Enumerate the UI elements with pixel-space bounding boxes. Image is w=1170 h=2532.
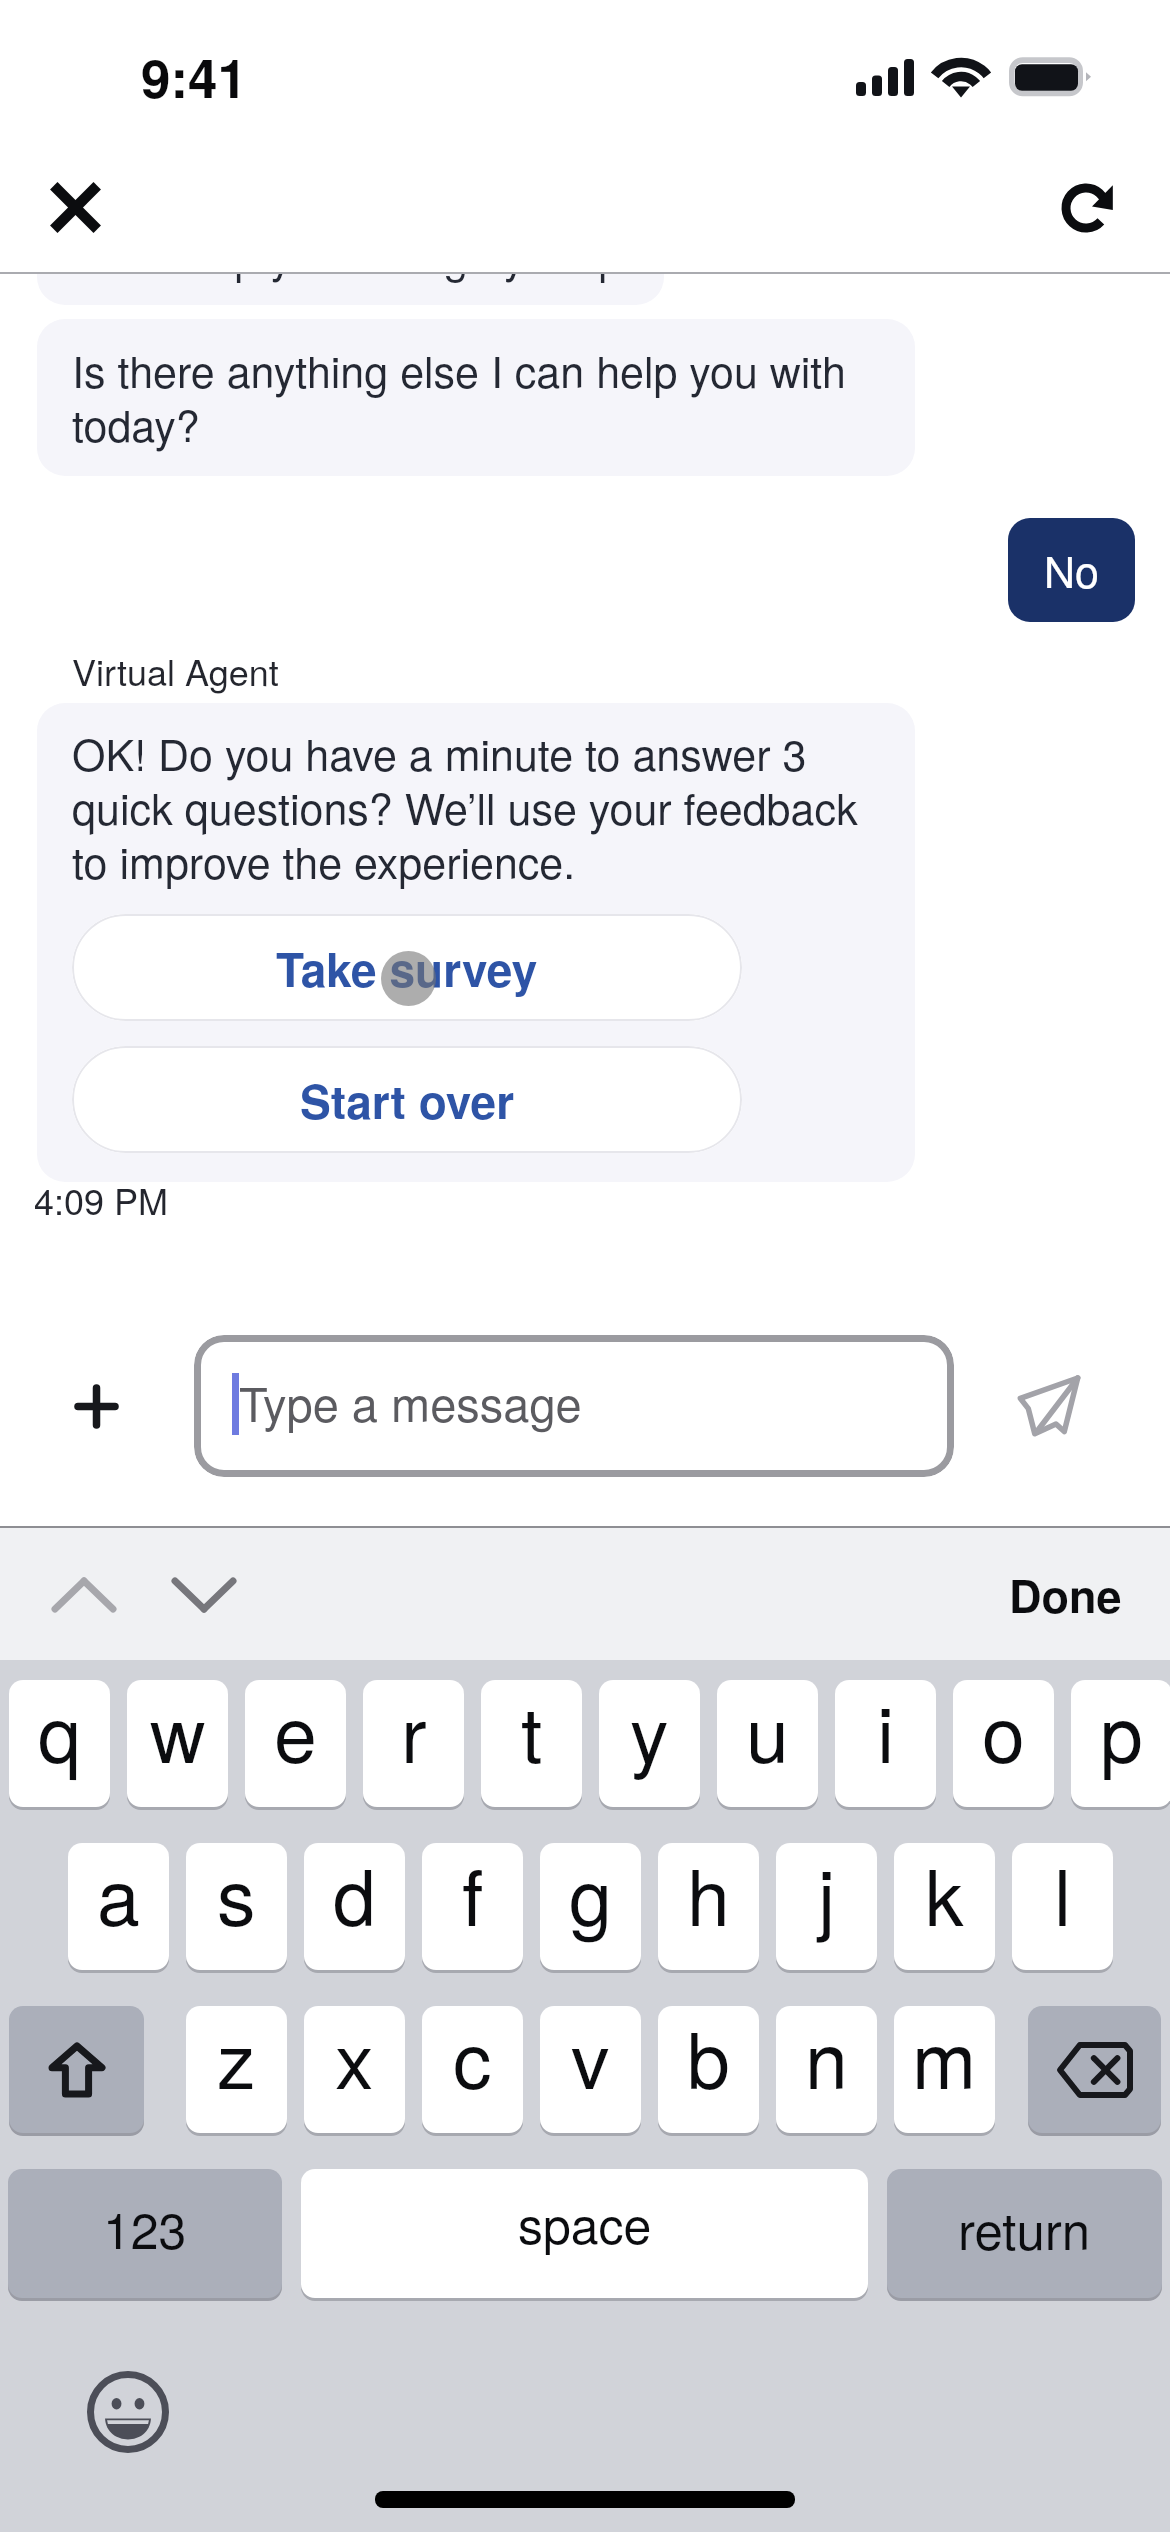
staticText: w: [150, 1680, 206, 1785]
staticText: Done: [1009, 1562, 1122, 1626]
staticText: k: [925, 1843, 964, 1948]
button[interactable]: Close: [28, 160, 122, 254]
staticText: c: [453, 2006, 492, 2111]
staticText: Is there anything else I can help you wi…: [72, 339, 862, 455]
staticText: b: [687, 2006, 730, 2111]
button[interactable]: c: [422, 2006, 523, 2133]
staticText: 123: [103, 2192, 187, 2264]
staticText: f: [462, 1843, 484, 1948]
button[interactable]: Take survey: [72, 914, 742, 1021]
staticText: Start over: [300, 1067, 515, 1133]
staticText: x: [335, 2006, 374, 2111]
staticText: a: [97, 1843, 140, 1948]
staticText: 9:41: [141, 38, 248, 114]
staticText: Virtual Agent: [72, 645, 279, 697]
button[interactable]: space: [301, 2169, 868, 2298]
staticText: Type a message: [239, 1368, 582, 1435]
button[interactable]: Done: [975, 1538, 1155, 1650]
staticText: v: [571, 2006, 610, 2111]
button[interactable]: u: [717, 1680, 818, 1807]
button[interactable]: Is there anything else I can help you wi…: [37, 319, 915, 476]
staticText: q: [38, 1680, 81, 1785]
staticText: o: [982, 1680, 1025, 1785]
button[interactable]: t: [481, 1680, 582, 1807]
button[interactable]: l: [1012, 1843, 1113, 1970]
button[interactable]: Add attachment: [50, 1360, 142, 1452]
button[interactable]: No: [1008, 518, 1135, 622]
button[interactable]: f: [422, 1843, 523, 1970]
staticText: g: [569, 1843, 612, 1948]
button[interactable]: g: [540, 1843, 641, 1970]
button[interactable]: 123: [8, 2169, 282, 2298]
button[interactable]: Type a message: [194, 1335, 954, 1477]
button[interactable]: z: [186, 2006, 287, 2133]
button[interactable]: w: [127, 1680, 228, 1807]
button[interactable]: Emoji: [80, 2364, 176, 2460]
staticText: i: [877, 1680, 895, 1785]
button[interactable]: n: [776, 2006, 877, 2133]
staticText: h: [687, 1843, 730, 1948]
staticText: t: [521, 1680, 543, 1785]
staticText: l: [1054, 1843, 1072, 1948]
staticText: d: [333, 1843, 376, 1948]
staticText: return: [958, 2191, 1091, 2264]
button[interactable]: j: [776, 1843, 877, 1970]
button[interactable]: Start over: [72, 1046, 742, 1153]
button[interactable]: x: [304, 2006, 405, 2133]
button[interactable]: return: [887, 2169, 1162, 2298]
button[interactable]: h: [658, 1843, 759, 1970]
staticText: s: [217, 1843, 256, 1948]
staticText: 4:09 PM: [34, 1174, 169, 1226]
button[interactable]: s: [186, 1843, 287, 1970]
staticText: n: [805, 2006, 848, 2111]
staticText: u: [746, 1680, 789, 1785]
button[interactable]: p: [1071, 1680, 1170, 1807]
button[interactable]: e: [245, 1680, 346, 1807]
button[interactable]: d: [304, 1843, 405, 1970]
staticText: p: [1100, 1680, 1143, 1785]
staticText: I can help you change your plan: [72, 224, 664, 286]
staticText: e: [274, 1680, 317, 1785]
button[interactable]: Shift: [9, 2006, 144, 2133]
button[interactable]: Send: [990, 1355, 1100, 1465]
button[interactable]: a: [68, 1843, 169, 1970]
button[interactable]: i: [835, 1680, 936, 1807]
button[interactable]: Backspace: [1028, 2006, 1161, 2133]
button[interactable]: b: [658, 2006, 759, 2133]
button[interactable]: m: [894, 2006, 995, 2133]
button[interactable]: v: [540, 2006, 641, 2133]
button[interactable]: k: [894, 1843, 995, 1970]
staticText: y: [630, 1680, 669, 1785]
staticText: No: [1044, 539, 1099, 601]
staticText: OK! Do you have a minute to answer 3 qui…: [72, 722, 872, 892]
staticText: z: [217, 2006, 256, 2111]
button[interactable]: o: [953, 1680, 1054, 1807]
staticText: Take survey: [276, 935, 538, 1001]
staticText: r: [401, 1680, 427, 1785]
button[interactable]: q: [9, 1680, 110, 1807]
staticText: j: [818, 1843, 836, 1948]
button[interactable]: Next field: [158, 1548, 250, 1640]
staticText: m: [912, 2006, 977, 2111]
button[interactable]: Previous field: [38, 1548, 130, 1640]
button[interactable]: r: [363, 1680, 464, 1807]
staticText: space: [518, 2187, 652, 2259]
button[interactable]: Refresh: [1044, 158, 1140, 254]
button[interactable]: y: [599, 1680, 700, 1807]
